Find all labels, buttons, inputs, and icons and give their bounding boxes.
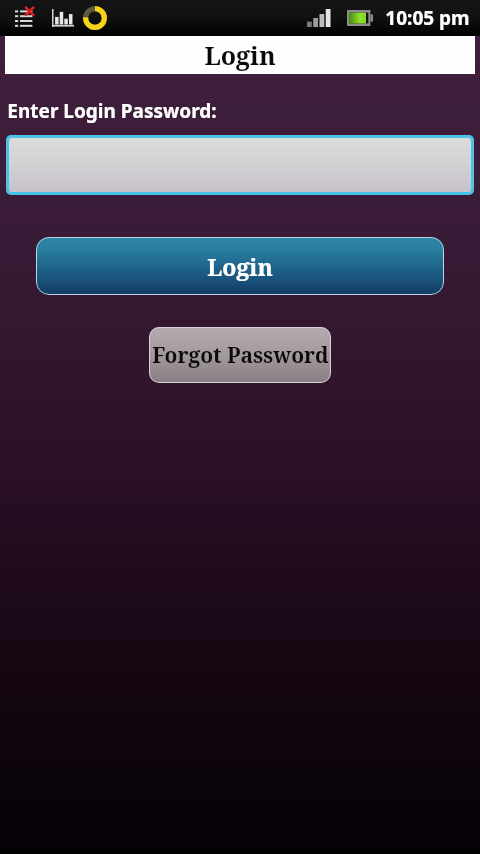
- button[interactable]: [9, 138, 471, 192]
- button[interactable]: Forgot Password: [149, 327, 331, 383]
- staticText: Enter Login Password:: [7, 98, 217, 124]
- staticText: Login: [207, 251, 273, 282]
- staticText: Forgot Password: [152, 341, 329, 370]
- staticText: Login: [204, 38, 276, 72]
- staticText: 10:05 pm: [385, 5, 470, 31]
- button[interactable]: Login: [36, 237, 444, 295]
